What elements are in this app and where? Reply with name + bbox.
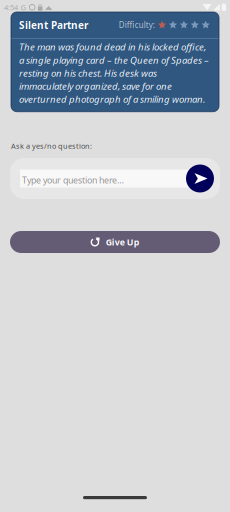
staticText: The man was found dead in his locked off…: [19, 40, 209, 106]
staticText: Ask a yes/no question:: [11, 141, 92, 151]
staticText: Difficulty:: [119, 20, 155, 30]
staticText: G: [20, 2, 26, 12]
button[interactable]: Give Up: [10, 231, 220, 253]
staticText: Give Up: [106, 236, 140, 248]
staticText: 4:54: [4, 2, 18, 12]
staticText: Type your question here…: [22, 174, 124, 186]
button[interactable]: Send question: [186, 164, 214, 192]
staticText: Silent Partner: [19, 18, 88, 32]
